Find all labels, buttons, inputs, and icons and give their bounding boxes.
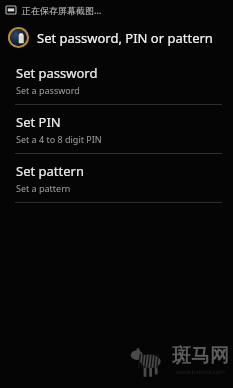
staticText: Set password, PIN or pattern xyxy=(37,29,213,47)
button[interactable]: Set password xyxy=(0,56,233,104)
button[interactable]: Set PIN xyxy=(0,105,233,153)
staticText: Set a pattern xyxy=(16,182,71,194)
staticText: Set a 4 to 8 digit PIN xyxy=(16,133,102,145)
staticText: Set password xyxy=(16,64,98,82)
staticText: www.banma.com xyxy=(176,368,225,376)
staticText: 正在保存屏幕截图… xyxy=(22,4,102,16)
staticText: Set pattern xyxy=(16,162,84,180)
staticText: Set a password xyxy=(16,84,80,96)
staticText: 斑马网 xyxy=(172,344,229,368)
button[interactable]: Set pattern xyxy=(0,154,233,202)
staticText: Set PIN xyxy=(16,113,61,131)
